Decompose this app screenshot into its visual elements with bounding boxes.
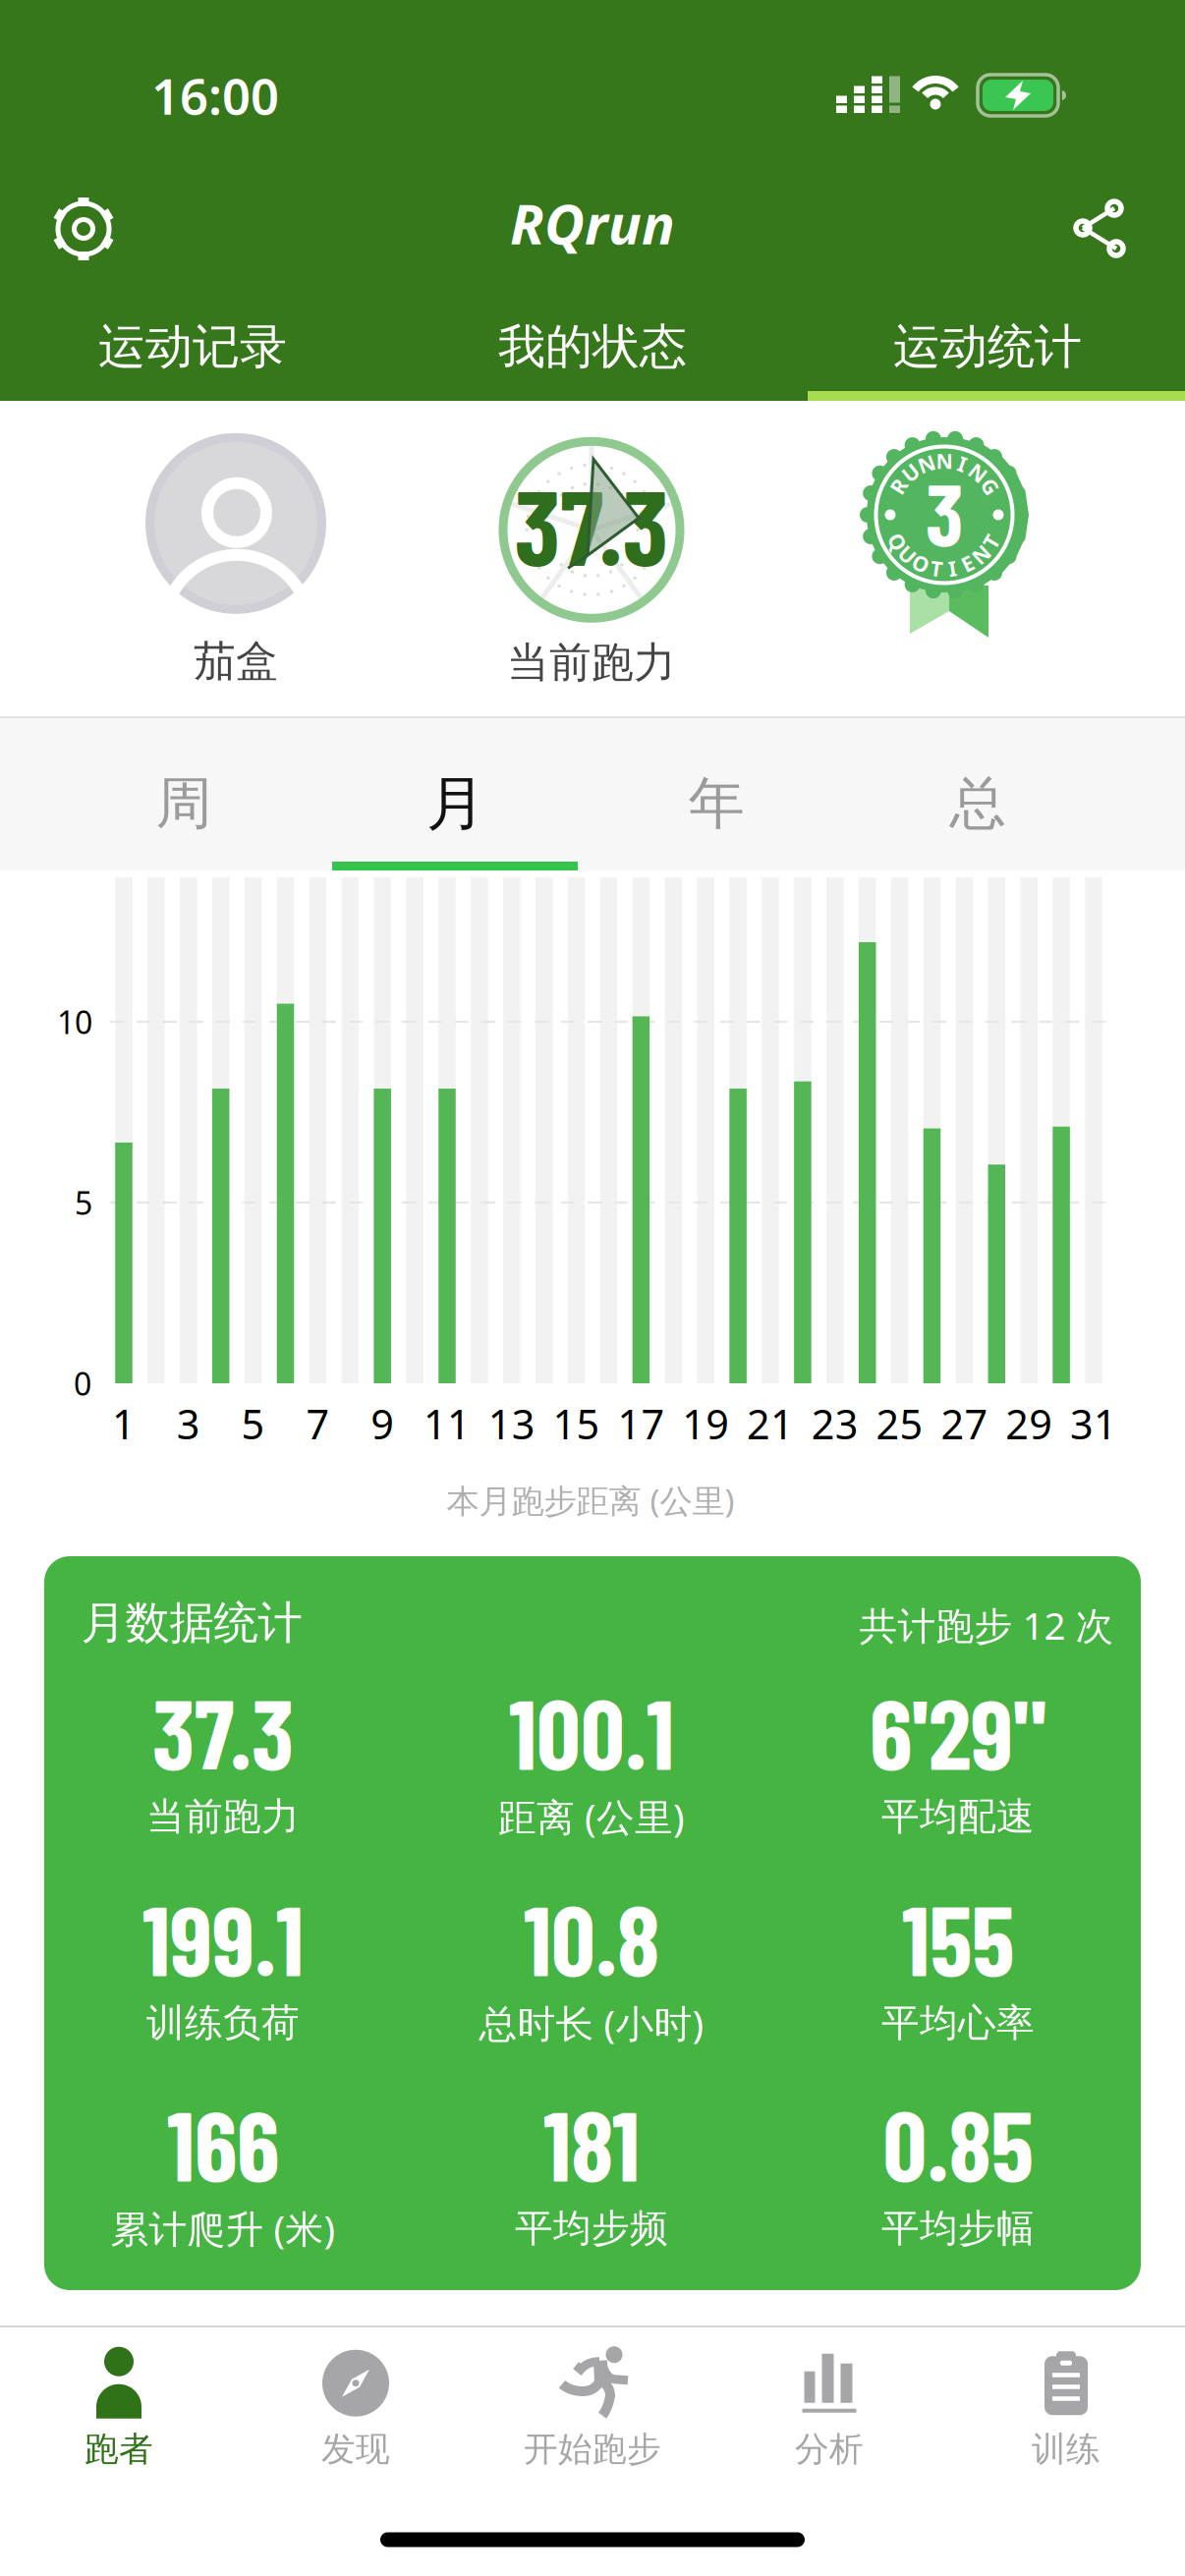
button[interactable]: 发现 (237, 2338, 474, 2476)
staticText: 37.3 (514, 461, 669, 587)
button[interactable]: 跑者 (0, 2338, 237, 2476)
staticText: 周 (156, 769, 212, 838)
staticText: 运动统计 (893, 318, 1082, 376)
staticText: RQrun (510, 186, 675, 260)
staticText: 21 (747, 1397, 794, 1451)
staticText: 我的状态 (498, 318, 687, 376)
staticText: 共计跑步 12 次 (859, 1600, 1114, 1650)
staticText: 0.85 (883, 2085, 1033, 2201)
staticText: 月数据统计 (81, 1596, 302, 1650)
button[interactable]: 运动记录 (6, 303, 379, 391)
staticText: 分析 (795, 2428, 864, 2470)
staticText: 平均配速 (881, 1793, 1035, 1840)
staticText: 3 (177, 1397, 200, 1451)
staticText: 年 (688, 769, 744, 838)
staticText: 29 (1005, 1397, 1053, 1451)
staticText: N (936, 447, 953, 475)
staticText: Q (889, 528, 906, 556)
button[interactable]: 月 (338, 745, 574, 863)
staticText: U (900, 541, 915, 568)
staticText: 27 (941, 1397, 988, 1451)
staticText: 茄盒 (194, 635, 278, 687)
staticText: I (958, 450, 966, 478)
staticText: 19 (682, 1397, 729, 1451)
button[interactable]: 我的状态 (406, 303, 779, 391)
staticText: 13 (488, 1397, 535, 1451)
staticText: 181 (543, 2085, 640, 2201)
staticText: N (970, 459, 986, 487)
button[interactable]: Share (1073, 198, 1128, 259)
button[interactable]: 茄盒 (145, 433, 326, 687)
staticText: 本月跑步距离 (公里) (447, 1478, 734, 1522)
staticText: 当前跑力 (507, 637, 676, 688)
button[interactable]: 训练 (948, 2338, 1185, 2476)
button[interactable]: Settings (47, 193, 120, 265)
staticText: T (930, 554, 942, 582)
staticText: 发现 (321, 2428, 390, 2470)
staticText: R (892, 472, 905, 500)
staticText: I (948, 554, 956, 582)
staticText: 总 (950, 769, 1006, 838)
button[interactable]: 运动统计 (801, 303, 1174, 391)
staticText: 10 (57, 1001, 92, 1043)
staticText: 199.1 (142, 1879, 304, 1996)
staticText: G (983, 472, 997, 500)
staticText: 7 (306, 1397, 330, 1451)
staticText: 跑者 (85, 2428, 153, 2470)
staticText: 开始跑步 (524, 2428, 661, 2470)
button[interactable]: 总 (860, 745, 1096, 863)
button[interactable]: 年 (598, 745, 834, 863)
staticText: 总时长 (小时) (479, 1998, 704, 2048)
staticText: 累计爬升 (米) (111, 2203, 336, 2253)
staticText: 训练 (1032, 2428, 1100, 2470)
button[interactable]: 周 (66, 745, 302, 863)
button[interactable]: Running Quotient 3 (846, 414, 1043, 642)
staticText: 166 (167, 2085, 279, 2201)
staticText: 6'29" (870, 1673, 1046, 1789)
staticText: N (918, 450, 935, 478)
staticText: 11 (423, 1397, 471, 1451)
staticText: 距离 (公里) (498, 1791, 685, 1842)
staticText: 23 (811, 1397, 859, 1451)
staticText: 155 (902, 1879, 1014, 1996)
staticText: 17 (617, 1397, 665, 1451)
button[interactable]: 开始跑步 (474, 2338, 711, 2476)
staticText: 0 (74, 1362, 91, 1404)
staticText: U (903, 459, 918, 487)
staticText: 9 (371, 1397, 394, 1451)
staticText: 训练负荷 (146, 2000, 300, 2046)
staticText: 25 (876, 1397, 923, 1451)
staticText: 平均步幅 (881, 2205, 1035, 2252)
staticText: 15 (553, 1397, 600, 1451)
staticText: 5 (241, 1397, 265, 1451)
staticText: 37.3 (152, 1673, 294, 1789)
staticText: 当前跑力 (146, 1793, 300, 1840)
staticText: 运动记录 (98, 318, 287, 376)
staticText: 3 (926, 460, 963, 564)
staticText: T (985, 528, 997, 556)
staticText: 31 (1070, 1397, 1117, 1451)
staticText: 10.8 (524, 1879, 659, 1996)
staticText: E (962, 550, 974, 577)
staticText: N (973, 541, 989, 568)
staticText: 1 (112, 1397, 136, 1451)
staticText: 16:00 (151, 62, 279, 128)
staticText: O (912, 550, 929, 577)
staticText: 5 (75, 1182, 92, 1223)
button[interactable]: 分析 (711, 2338, 948, 2476)
staticText: 平均步频 (515, 2205, 668, 2252)
button[interactable]: 37.3 (493, 432, 690, 688)
staticText: 平均心率 (881, 2000, 1035, 2046)
staticText: 100.1 (509, 1673, 674, 1789)
staticText: 月 (426, 767, 485, 840)
